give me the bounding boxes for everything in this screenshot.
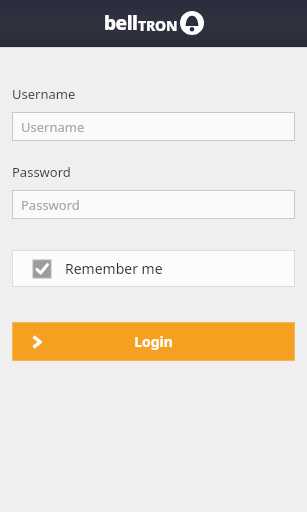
button[interactable]: Username <box>12 112 295 141</box>
staticText: Username <box>12 85 76 103</box>
staticText: Remember me <box>65 259 163 278</box>
staticText: Password <box>21 196 80 214</box>
staticText: Login <box>12 332 295 351</box>
staticText: Password <box>12 163 71 181</box>
button[interactable]: Login <box>12 322 295 361</box>
button[interactable]: Password <box>12 190 295 219</box>
button[interactable]: Remember me <box>12 250 295 287</box>
staticText: Username <box>21 118 85 136</box>
staticText: TRON <box>138 16 178 35</box>
staticText: bell <box>104 10 138 36</box>
other: Belltron logo <box>180 11 204 35</box>
